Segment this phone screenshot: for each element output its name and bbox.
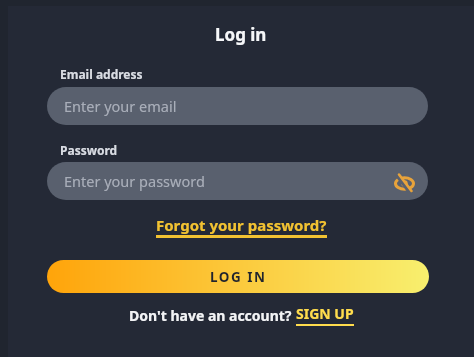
button[interactable]: Enter your email	[47, 87, 428, 125]
staticText: Password	[60, 142, 118, 158]
button[interactable]: Forgot your password?	[156, 215, 327, 238]
staticText: Forgot your password?	[156, 215, 327, 235]
staticText: Email address	[60, 66, 143, 82]
button[interactable]	[394, 173, 415, 194]
staticText: SIGN UP	[296, 304, 354, 323]
staticText: Enter your email	[64, 96, 177, 116]
button[interactable]: LOG IN	[47, 260, 429, 293]
staticText: Enter your password	[64, 171, 205, 191]
staticText: Log in	[215, 23, 267, 46]
staticText: Don't have an account?	[129, 306, 296, 325]
button[interactable]: Enter your password	[47, 162, 428, 200]
staticText: LOG IN	[210, 268, 267, 286]
button[interactable]: SIGN UP	[296, 304, 354, 326]
